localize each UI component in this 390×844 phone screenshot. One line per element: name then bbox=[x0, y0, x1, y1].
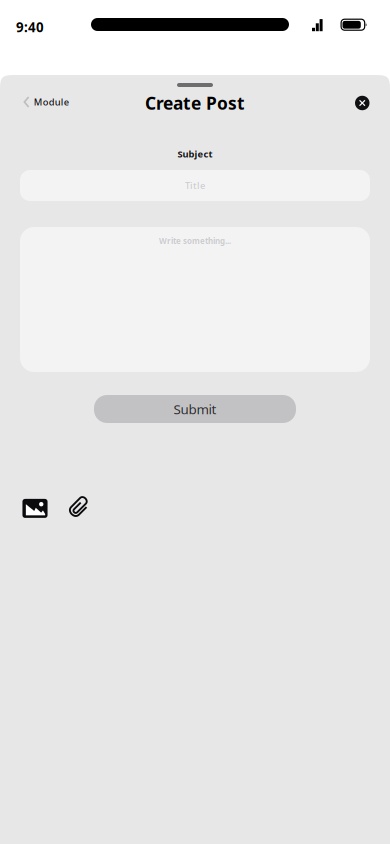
staticText: Subject bbox=[177, 148, 212, 160]
staticText: 9:40 bbox=[16, 18, 44, 36]
staticText: Submit bbox=[173, 400, 216, 418]
staticText: Title bbox=[185, 179, 205, 192]
button[interactable]: Submit bbox=[94, 395, 296, 423]
button[interactable]: Module bbox=[0, 85, 83, 119]
button[interactable]: Close bbox=[341, 86, 389, 120]
staticText: Create Post bbox=[145, 91, 245, 114]
staticText: Module bbox=[34, 96, 69, 108]
button[interactable]: Attach file bbox=[62, 491, 94, 523]
button[interactable]: Add photo bbox=[19, 492, 51, 524]
staticText: Write something... bbox=[159, 235, 231, 246]
